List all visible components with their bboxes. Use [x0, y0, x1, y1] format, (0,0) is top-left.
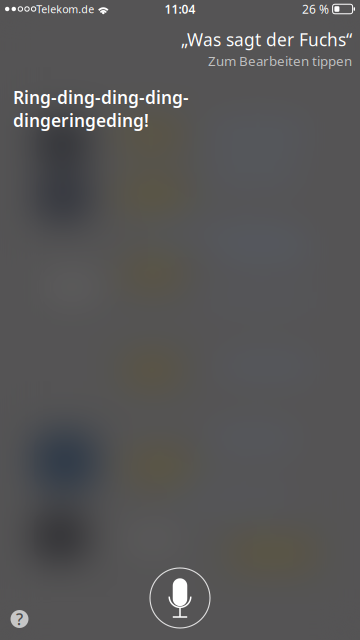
staticText: Telekom.de	[36, 2, 94, 16]
staticText: 11:04	[164, 1, 195, 17]
button[interactable]: Help	[0, 599, 39, 639]
staticText: 26 %	[302, 1, 329, 17]
staticText: „Was sagt der Fuchs“	[181, 28, 352, 51]
staticText: Zum Bearbeiten tippen	[208, 52, 352, 70]
staticText: Ring-ding-ding-ding- dingeringeding!	[13, 86, 189, 132]
button[interactable]: Talk to Siri	[144, 562, 216, 634]
staticText: ?	[16, 608, 23, 630]
button[interactable]: „Was sagt der Fuchs“	[181, 18, 360, 72]
